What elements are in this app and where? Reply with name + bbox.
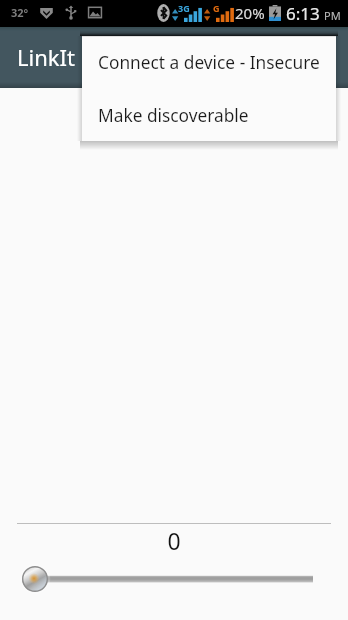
staticText: 32° bbox=[11, 5, 29, 20]
button[interactable]: LinkIt Lite BLE bbox=[0, 27, 230, 88]
button[interactable]: Volume slider bbox=[0, 559, 348, 599]
staticText: 20% bbox=[235, 3, 265, 23]
staticText: G bbox=[213, 2, 220, 14]
staticText: 0 bbox=[167, 525, 181, 551]
staticText: 3G bbox=[178, 2, 190, 14]
staticText: Make discoverable bbox=[98, 104, 249, 128]
button[interactable]: Connect a device - Insecure bbox=[82, 36, 336, 88]
staticText: Connect a device - Insecure bbox=[98, 51, 320, 75]
staticText: 6:13 bbox=[286, 2, 320, 25]
button[interactable]: Make discoverable bbox=[82, 88, 336, 141]
button[interactable]: More options bbox=[304, 27, 348, 88]
staticText: LinkIt Lite BLE bbox=[17, 42, 163, 72]
staticText: PM bbox=[324, 8, 341, 23]
